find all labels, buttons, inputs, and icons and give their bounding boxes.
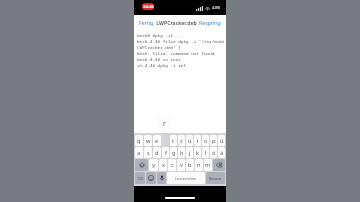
staticText: v [180, 161, 183, 169]
staticText: r [163, 119, 166, 129]
button[interactable]: w [144, 135, 152, 146]
staticText: d [155, 149, 159, 157]
staticText: ö [212, 149, 216, 157]
staticText: ä [220, 149, 224, 157]
staticText: f [165, 149, 167, 157]
button[interactable]: p [210, 135, 217, 146]
button[interactable]: b [186, 159, 194, 171]
button[interactable]: Fertig [137, 17, 156, 28]
button[interactable]: q [135, 135, 143, 146]
staticText: bash# dpkg -il ... [137, 32, 184, 38]
staticText: a [137, 149, 141, 157]
button[interactable]: Dictation [157, 172, 166, 184]
button[interactable]: j [186, 147, 193, 158]
button[interactable]: y [149, 159, 158, 171]
staticText: x [162, 161, 165, 169]
button[interactable]: x [159, 159, 167, 171]
button[interactable]: e [153, 135, 161, 146]
button[interactable]: t [170, 135, 177, 146]
staticText: h [180, 149, 184, 157]
staticText: q [137, 137, 141, 145]
button[interactable]: f [162, 147, 169, 158]
staticText: m [205, 161, 211, 169]
button[interactable]: k [194, 147, 201, 158]
staticText: c [171, 161, 174, 169]
staticText: b [188, 161, 192, 169]
staticText: t [172, 137, 175, 145]
button[interactable]: Backspace [213, 159, 225, 171]
staticText: bash: filza: command not found [137, 50, 215, 56]
button[interactable]: Leerzeichen [167, 172, 205, 184]
button[interactable]: d [153, 147, 161, 158]
staticText: s [147, 149, 150, 157]
button[interactable]: Respring [197, 17, 223, 28]
staticText: 43% [212, 5, 221, 11]
staticText: k [196, 149, 199, 157]
staticText: p [212, 137, 216, 145]
staticText: sh-4.4# dpkg -i ref [137, 62, 186, 68]
button[interactable]: ö [210, 147, 217, 158]
button[interactable]: u [186, 135, 193, 146]
button[interactable]: ä [218, 147, 225, 158]
button[interactable]: s [144, 147, 152, 158]
staticText: bash-4.4# filza dpkg -i "/var/mobi [137, 38, 225, 44]
button[interactable]: m [204, 159, 212, 171]
button[interactable]: z [178, 135, 185, 146]
staticText: z [180, 137, 183, 145]
staticText: ü [220, 137, 224, 145]
staticText: y [152, 161, 155, 169]
staticText: i [197, 137, 199, 145]
staticText: l [205, 149, 207, 157]
button[interactable]: h [178, 147, 185, 158]
button[interactable]: 123 [135, 172, 145, 184]
button[interactable]: v [177, 159, 185, 171]
button[interactable]: n [195, 159, 203, 171]
staticText: j [189, 149, 191, 157]
staticText: LWPCracker.deb" ] [137, 44, 181, 50]
button[interactable]: Return [206, 172, 225, 184]
button[interactable]: g [170, 147, 177, 158]
button[interactable]: o [202, 135, 209, 146]
staticText: g [172, 149, 176, 157]
staticText: bash-4.4# su root [137, 56, 181, 62]
staticText: LWPCracker.deb [156, 19, 197, 26]
button[interactable]: l [202, 147, 209, 158]
button[interactable]: a [135, 147, 143, 158]
staticText: w [146, 137, 151, 145]
button[interactable]: Shift [135, 159, 148, 171]
staticText: Leerzeichen [175, 176, 197, 181]
button[interactable]: c [168, 159, 176, 171]
button[interactable]: i [194, 135, 201, 146]
staticText: e [155, 137, 159, 145]
staticText: 24:25 [143, 4, 154, 10]
button[interactable]: ü [218, 135, 225, 146]
staticText: u [188, 137, 192, 145]
staticText: Fertig [139, 19, 154, 26]
button[interactable]: Emoji [146, 172, 156, 184]
staticText: Respring [199, 19, 221, 26]
staticText: n [197, 161, 201, 169]
staticText: Return [209, 176, 222, 181]
staticText: 123 [137, 176, 144, 181]
staticText: o [204, 137, 208, 145]
